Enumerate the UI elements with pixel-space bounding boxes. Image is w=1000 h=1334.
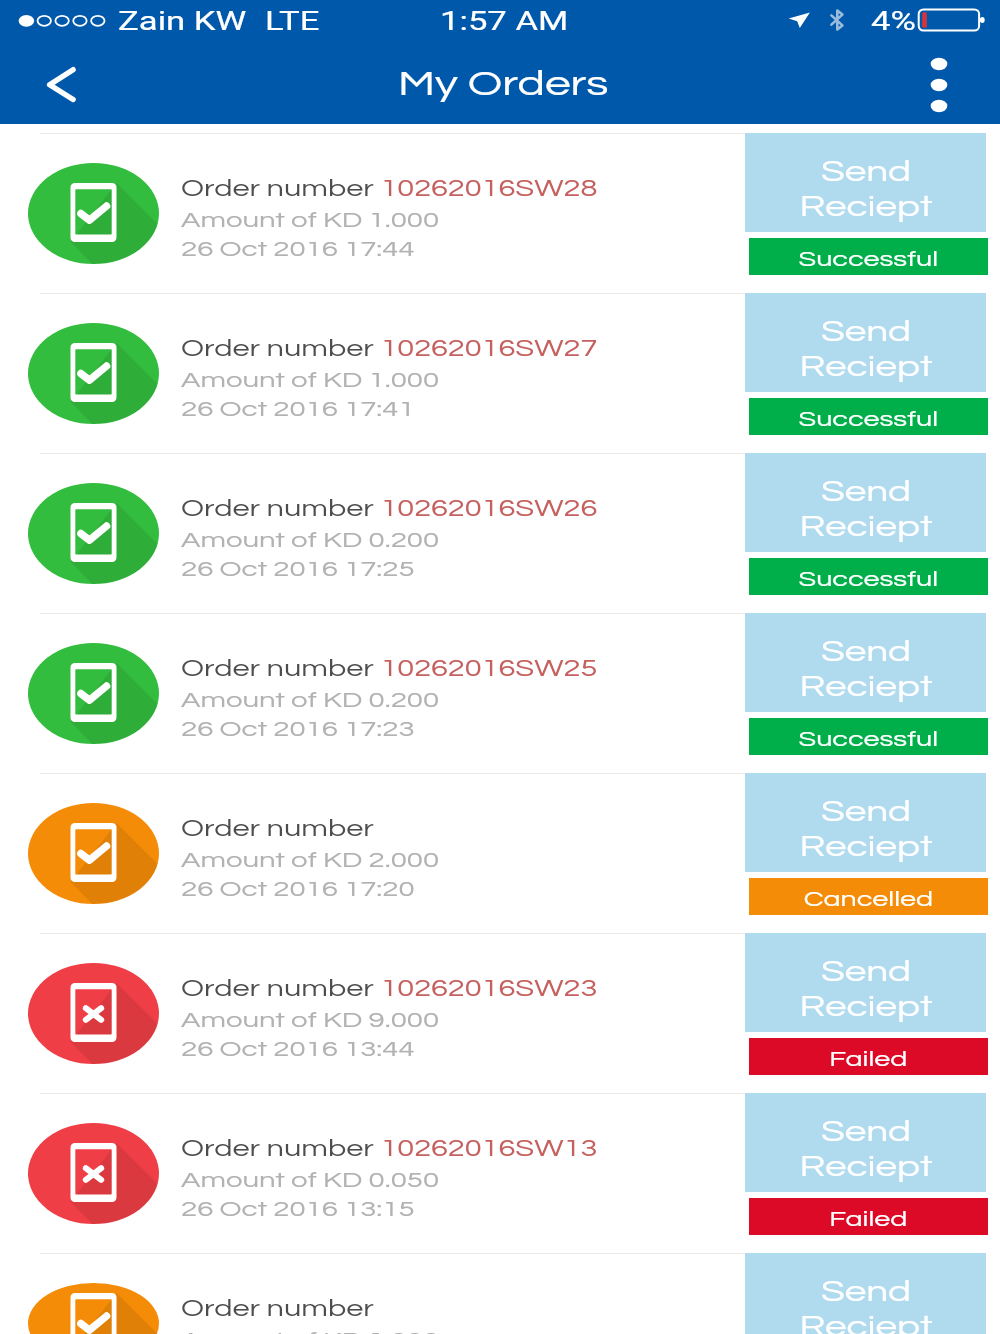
button[interactable]: Send Reciept	[745, 613, 986, 712]
staticText: 26 Oct 2016 17:20	[181, 878, 416, 901]
button[interactable]: Successful	[749, 398, 988, 435]
staticText: Send Reciept	[799, 317, 933, 382]
button[interactable]: Order number	[0, 773, 1000, 933]
staticText: My Orders	[398, 67, 609, 103]
button[interactable]: More options	[890, 46, 1000, 124]
staticText: Amount of KD 0.200	[181, 529, 440, 552]
staticText: 1:57 AM	[440, 6, 569, 36]
staticText: 26 Oct 2016 17:23	[181, 718, 416, 741]
staticText: Send Reciept	[799, 157, 933, 222]
button[interactable]: Successful	[749, 718, 988, 755]
staticText: 26 Oct 2016 17:44	[181, 238, 416, 261]
button[interactable]: Order number 10262016SW27	[0, 293, 1000, 453]
staticText: Successful	[798, 728, 938, 750]
staticText: 26 Oct 2016 13:44	[181, 1038, 416, 1061]
staticText: Amount of KD 1.000	[181, 369, 440, 392]
staticText: Order number 10262016SW26	[181, 497, 598, 521]
staticText: Order number 10262016SW25	[181, 657, 598, 681]
staticText: Order number 10262016SW23	[181, 977, 598, 1001]
button[interactable]: Successful	[749, 558, 988, 595]
button[interactable]: Send Reciept	[745, 293, 986, 392]
staticText: 26 Oct 2016 13:15	[181, 1198, 416, 1221]
button[interactable]: Order number 10262016SW28	[0, 133, 1000, 293]
staticText: Order number 10262016SW28	[181, 177, 598, 201]
staticText: Successful	[798, 248, 938, 270]
staticText: Failed	[829, 1208, 908, 1230]
staticText: LTE	[265, 6, 320, 36]
staticText: Send Reciept	[799, 477, 933, 542]
staticText: 4%	[871, 6, 916, 36]
staticText: Successful	[798, 408, 938, 430]
staticText: Amount of KD 1.000	[181, 1329, 440, 1334]
button[interactable]: Failed	[749, 1198, 988, 1235]
staticText: Amount of KD 1.000	[181, 209, 440, 232]
staticText: Order number 10262016SW27	[181, 337, 598, 361]
staticText: Successful	[798, 568, 938, 590]
button[interactable]: Back	[0, 46, 110, 124]
staticText: Cancelled	[804, 888, 934, 910]
button[interactable]: Order number 10262016SW26	[0, 453, 1000, 613]
button[interactable]: Successful	[749, 238, 988, 275]
button[interactable]: Failed	[749, 1038, 988, 1075]
staticText: Send Reciept	[799, 637, 933, 702]
button[interactable]: Order number 10262016SW13	[0, 1093, 1000, 1253]
staticText: Amount of KD 2.000	[181, 849, 440, 872]
staticText: Failed	[829, 1048, 908, 1070]
button[interactable]: Send Reciept	[745, 1093, 986, 1192]
button[interactable]: Order number 10262016SW23	[0, 933, 1000, 1093]
staticText: 26 Oct 2016 17:41	[181, 398, 416, 421]
button[interactable]: Send Reciept	[745, 1253, 986, 1334]
staticText: Order number	[181, 817, 381, 841]
staticText: Amount of KD 0.050	[181, 1169, 440, 1192]
button[interactable]: Cancelled	[749, 878, 988, 915]
button[interactable]: Order number 10262016SW25	[0, 613, 1000, 773]
staticText: Order number 10262016SW13	[181, 1137, 598, 1161]
staticText: Amount of KD 9.000	[181, 1009, 440, 1032]
button[interactable]: Send Reciept	[745, 453, 986, 552]
staticText: Send Reciept	[799, 1277, 933, 1334]
button[interactable]: Send Reciept	[745, 133, 986, 232]
staticText: Zain KW	[118, 6, 247, 36]
staticText: Amount of KD 0.200	[181, 689, 440, 712]
staticText: Order number	[181, 1297, 381, 1321]
staticText: 26 Oct 2016 17:25	[181, 558, 416, 581]
staticText: Send Reciept	[799, 1117, 933, 1182]
button[interactable]: Send Reciept	[745, 773, 986, 872]
button[interactable]: Order number	[0, 1253, 1000, 1334]
staticText: Send Reciept	[799, 957, 933, 1022]
staticText: Send Reciept	[799, 797, 933, 862]
button[interactable]: Send Reciept	[745, 933, 986, 1032]
